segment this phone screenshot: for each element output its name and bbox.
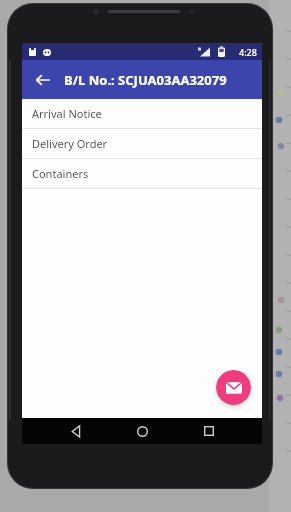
- button[interactable]: Containers: [22, 159, 262, 189]
- staticText: Delivery Order: [32, 136, 108, 151]
- button[interactable]: Back: [28, 65, 58, 95]
- staticText: Containers: [32, 166, 89, 181]
- staticText: B/L No.: SCJUA03AA32079: [64, 71, 227, 89]
- staticText: 4:28: [239, 46, 257, 58]
- button[interactable]: Arrival Notice: [22, 99, 262, 129]
- button[interactable]: Home: [129, 418, 155, 444]
- button[interactable]: Back: [63, 418, 89, 444]
- button[interactable]: Send message: [216, 370, 251, 405]
- button[interactable]: Delivery Order: [22, 129, 262, 159]
- button[interactable]: Recent apps: [196, 418, 222, 444]
- staticText: Arrival Notice: [32, 106, 102, 121]
